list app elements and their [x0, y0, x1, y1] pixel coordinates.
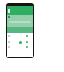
button[interactable]	[7, 45, 33, 48]
button[interactable]	[7, 34, 33, 37]
button[interactable]: Add	[19, 41, 22, 44]
button[interactable]	[7, 40, 33, 43]
